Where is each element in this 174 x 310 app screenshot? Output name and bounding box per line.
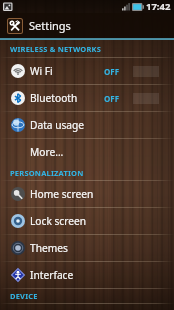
staticText: Lock screen xyxy=(30,214,87,228)
staticText: Data usage xyxy=(30,118,85,132)
staticText: Home screen xyxy=(30,187,94,201)
button[interactable]: Themes xyxy=(0,235,174,261)
staticText: Settings xyxy=(29,18,71,33)
staticText: 17:42 xyxy=(146,0,171,13)
staticText: OFF xyxy=(104,93,120,104)
button[interactable]: Lock screen xyxy=(0,208,174,234)
staticText: DEVICE xyxy=(10,291,38,301)
button[interactable]: More... xyxy=(0,139,174,165)
staticText: Wi Fi xyxy=(30,64,53,78)
staticText: Bluetooth xyxy=(30,91,78,105)
button[interactable]: Bluetooth xyxy=(0,85,174,111)
staticText: PERSONALIZATION xyxy=(10,168,84,178)
staticText: Interface xyxy=(30,268,74,282)
staticText: WIRELESS & NETWORKS xyxy=(10,44,102,54)
button[interactable]: Toggle Wi Fi xyxy=(133,66,159,77)
staticText: OFF xyxy=(104,66,120,77)
button[interactable]: Settings xyxy=(0,13,174,38)
button[interactable]: Wi Fi xyxy=(0,58,174,84)
staticText: Themes xyxy=(30,241,68,255)
button[interactable]: Home screen xyxy=(0,181,174,207)
button[interactable]: Interface xyxy=(0,262,174,288)
staticText: More... xyxy=(30,145,64,159)
button[interactable]: Toggle Bluetooth xyxy=(133,93,159,104)
button[interactable]: Data usage xyxy=(0,112,174,138)
